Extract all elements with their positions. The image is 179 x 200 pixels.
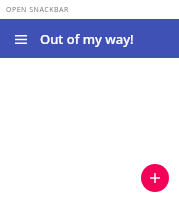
staticText: Out of my way! — [40, 30, 134, 48]
button[interactable]: OPEN SNACKBAR — [0, 0, 179, 19]
button[interactable]: Add — [141, 164, 169, 192]
button[interactable]: Open navigation menu — [10, 28, 32, 50]
staticText: OPEN SNACKBAR — [6, 5, 69, 15]
